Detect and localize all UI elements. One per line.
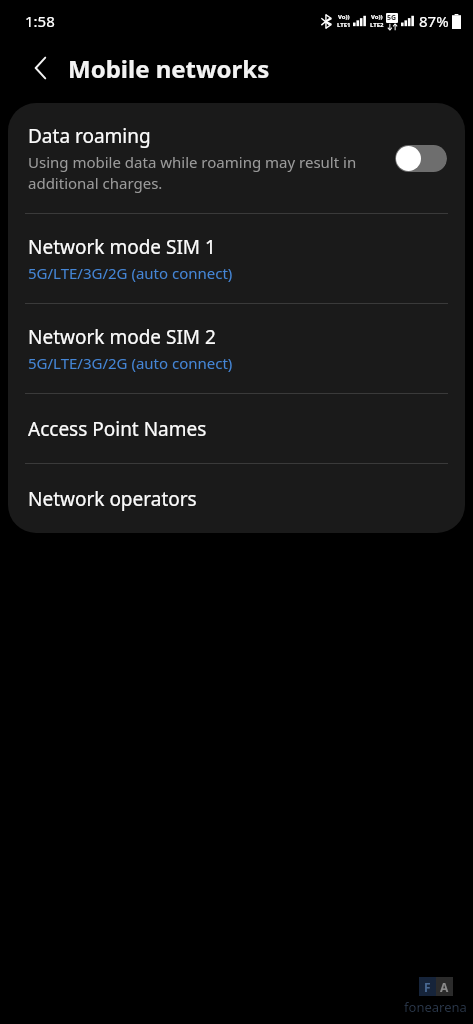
staticText: Mobile networks	[68, 52, 270, 85]
button[interactable]: Access Point Names	[8, 394, 465, 463]
staticText: LTE2	[370, 21, 384, 29]
button[interactable]: Network mode SIM 2	[8, 304, 465, 393]
staticText: Access Point Names	[28, 416, 207, 442]
staticText: 5G	[387, 13, 397, 23]
staticText: Vo))	[371, 13, 383, 21]
button[interactable]: Network operators	[8, 464, 465, 533]
staticText: Network mode SIM 1	[28, 234, 216, 260]
staticText: Network mode SIM 2	[28, 324, 216, 350]
staticText: A	[440, 979, 449, 995]
button[interactable]: Back	[18, 46, 62, 90]
button[interactable]: Data roaming	[8, 103, 465, 213]
staticText: 5G/LTE/3G/2G (auto connect)	[28, 263, 233, 283]
staticText: LTE1	[337, 21, 351, 29]
staticText: Data roaming	[28, 123, 151, 149]
staticText: fonearena	[404, 998, 467, 1016]
button[interactable]: Data roaming toggle	[395, 143, 447, 174]
staticText: Using mobile data while roaming may resu…	[28, 152, 385, 194]
button[interactable]: Network mode SIM 1	[8, 214, 465, 303]
staticText: Vo))	[338, 13, 350, 21]
staticText: 87%	[419, 11, 449, 31]
staticText: F	[424, 979, 431, 995]
staticText: Network operators	[28, 486, 197, 512]
staticText: 1:58	[25, 11, 55, 31]
staticText: 5G/LTE/3G/2G (auto connect)	[28, 353, 233, 373]
